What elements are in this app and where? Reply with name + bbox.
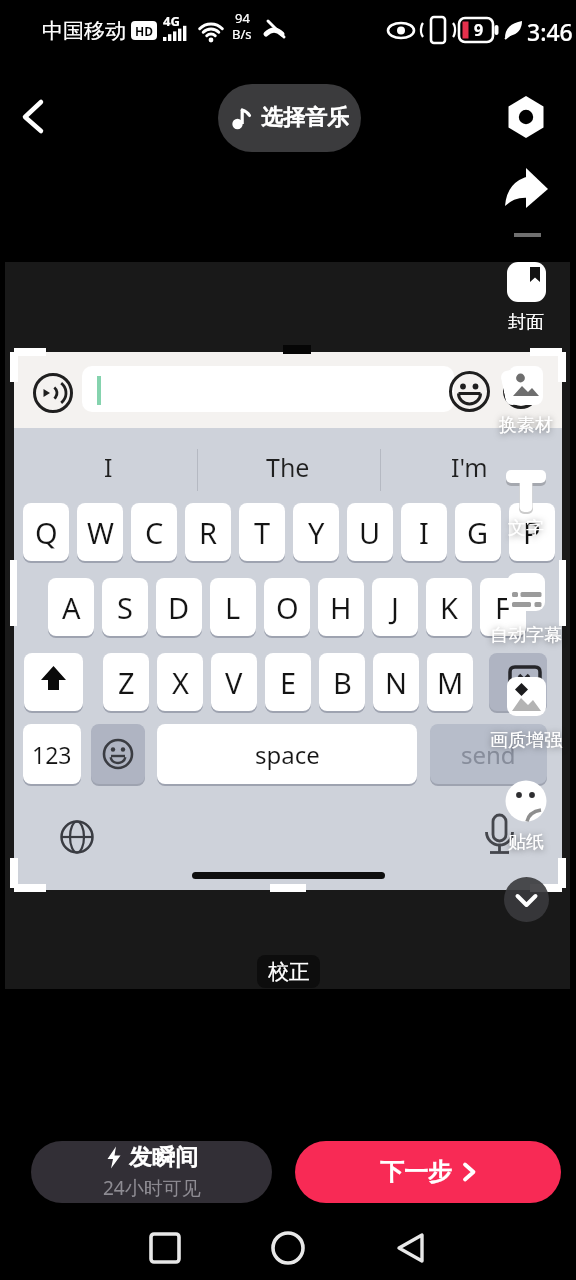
button[interactable] <box>12 94 56 138</box>
staticText: 4G <box>163 12 180 30</box>
button[interactable]: 封面 <box>500 262 552 334</box>
button[interactable]: 贴纸 <box>494 780 558 854</box>
staticText: I <box>419 513 429 552</box>
staticText: I'm <box>451 450 488 484</box>
staticText: Q <box>35 513 58 552</box>
staticText: K <box>440 588 458 627</box>
staticText: X <box>172 663 189 702</box>
staticText: 发瞬间 <box>129 1143 198 1172</box>
staticText: Z <box>118 663 135 702</box>
staticText: G <box>467 513 489 552</box>
staticText: B/s <box>232 25 252 43</box>
staticText: L <box>225 588 241 627</box>
staticText: 中国移动 <box>42 18 126 44</box>
staticText: Y <box>308 513 325 552</box>
staticText: J <box>391 588 399 627</box>
button[interactable] <box>504 877 549 922</box>
staticText: N <box>385 663 408 702</box>
button[interactable]: 校正 <box>257 955 320 988</box>
staticText: A <box>62 588 81 627</box>
staticText: C <box>145 513 164 552</box>
staticText: 文字 <box>508 517 544 540</box>
button[interactable]: 文字 <box>494 468 558 540</box>
staticText: The <box>266 450 310 484</box>
button[interactable]: 选择音乐 <box>218 84 361 152</box>
staticText: 封面 <box>508 311 544 334</box>
staticText: 24小时可见 <box>103 1175 201 1201</box>
staticText: S <box>117 588 133 627</box>
button[interactable] <box>503 94 549 140</box>
staticText: 换素材 <box>499 414 553 437</box>
staticText: 94 <box>235 9 250 27</box>
staticText: M <box>437 663 464 702</box>
staticText: P <box>523 513 541 552</box>
button[interactable] <box>271 1231 305 1265</box>
staticText: 下一步 <box>380 1157 452 1187</box>
staticText: 贴纸 <box>508 831 544 854</box>
staticText: B <box>333 663 352 702</box>
staticText: W <box>87 513 114 552</box>
button[interactable]: 发瞬间 <box>31 1141 272 1203</box>
staticText: 9 <box>474 19 484 41</box>
button[interactable] <box>503 166 553 212</box>
staticText: 123 <box>32 739 72 770</box>
staticText: 选择音乐 <box>261 104 349 132</box>
staticText: V <box>225 663 243 702</box>
staticText: space <box>255 738 320 771</box>
staticText: O <box>276 588 299 627</box>
staticText: 校正 <box>268 959 310 985</box>
staticText: HD <box>135 23 153 39</box>
staticText: H <box>330 588 352 627</box>
button[interactable]: 自动字幕 <box>486 573 566 647</box>
button[interactable]: 下一步 <box>295 1141 561 1203</box>
staticText: F <box>495 588 511 627</box>
staticText: U <box>359 513 381 552</box>
staticText: send <box>461 738 516 771</box>
staticText: 自动字幕 <box>490 624 562 647</box>
staticText: T <box>254 513 271 552</box>
button[interactable]: 换素材 <box>494 366 558 437</box>
button[interactable]: 画质增强 <box>486 677 566 752</box>
button[interactable] <box>395 1232 427 1264</box>
button[interactable] <box>149 1232 181 1264</box>
staticText: 3:46 <box>527 16 573 47</box>
staticText: E <box>280 663 297 702</box>
staticText: 画质增强 <box>490 729 562 752</box>
staticText: D <box>168 588 190 627</box>
staticText: R <box>199 513 218 552</box>
staticText: I <box>104 450 113 484</box>
